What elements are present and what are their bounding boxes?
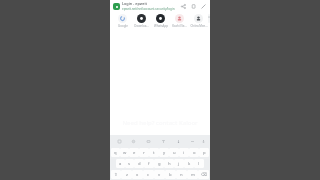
button[interactable]: y: [159, 148, 169, 157]
button[interactable]: g: [154, 159, 164, 168]
button[interactable]: c: [143, 170, 154, 179]
button[interactable]: v: [154, 170, 165, 179]
button[interactable]: Theme: [171, 135, 186, 147]
staticText: o: [193, 150, 196, 156]
staticText: Login - epwrit: [122, 1, 147, 6]
button[interactable]: b: [165, 170, 176, 179]
button[interactable]: ⌫: [198, 170, 209, 179]
staticText: z: [126, 172, 128, 178]
staticText: v: [158, 172, 161, 178]
button[interactable]: z: [121, 170, 132, 179]
staticText: p: [203, 150, 206, 156]
button[interactable]: k: [184, 159, 194, 168]
staticText: w: [123, 150, 127, 156]
staticText: Downloa...: [134, 24, 149, 28]
button[interactable]: Edit: [199, 2, 207, 10]
button[interactable]: h: [164, 159, 174, 168]
button[interactable]: a: [116, 159, 125, 168]
button[interactable]: m: [187, 170, 198, 179]
button[interactable]: Google: [113, 12, 132, 30]
button[interactable]: Downloa...: [132, 12, 151, 30]
button[interactable]: f: [144, 159, 154, 168]
button[interactable]: i: [179, 148, 189, 157]
staticText: j: [178, 161, 180, 167]
button[interactable]: WhatsApp: [151, 12, 170, 30]
staticText: l: [198, 161, 200, 167]
staticText: s: [128, 161, 131, 167]
staticText: a: [119, 161, 122, 167]
button[interactable]: Share: [179, 2, 187, 10]
button[interactable]: Voice input: [199, 135, 208, 147]
staticText: u: [173, 150, 176, 156]
staticText: q: [114, 150, 117, 156]
staticText: f: [148, 161, 150, 167]
button[interactable]: Sticker: [126, 135, 141, 147]
staticText: k: [188, 161, 191, 167]
button[interactable]: n: [176, 170, 187, 179]
staticText: y: [163, 150, 166, 156]
staticText: b: [169, 172, 172, 178]
button[interactable]: t: [149, 148, 159, 157]
staticText: Google: [118, 24, 128, 28]
staticText: d: [138, 161, 141, 167]
button[interactable]: l: [194, 159, 204, 168]
button[interactable]: [208, 12, 210, 30]
staticText: c: [147, 172, 150, 178]
button[interactable]: Chitra Mee...: [189, 12, 208, 30]
staticText: i: [183, 150, 185, 156]
button[interactable]: Clipboard: [112, 135, 126, 147]
staticText: epwrit.net/net/account-security/login: [122, 7, 175, 11]
staticText: ⇧: [114, 172, 118, 177]
button[interactable]: x: [132, 170, 143, 179]
staticText: e: [133, 150, 136, 156]
staticText: m: [191, 172, 195, 178]
button[interactable]: j: [174, 159, 184, 168]
staticText: t: [153, 150, 155, 156]
button[interactable]: p: [199, 148, 209, 157]
button[interactable]: More options: [186, 135, 199, 147]
button[interactable]: Kachil Se...: [170, 12, 189, 30]
button[interactable]: ⇧: [111, 170, 121, 179]
staticText: h: [168, 161, 171, 167]
button[interactable]: o: [189, 148, 199, 157]
staticText: r: [143, 150, 145, 156]
staticText: Chitra Mee...: [190, 24, 208, 28]
button[interactable]: s: [125, 159, 134, 168]
button[interactable]: GIF: [141, 135, 156, 147]
button[interactable]: q: [111, 148, 120, 157]
staticText: n: [180, 172, 183, 178]
button[interactable]: u: [169, 148, 179, 157]
button[interactable]: e: [129, 148, 139, 157]
button[interactable]: w: [120, 148, 129, 157]
staticText: WhatsApp: [154, 24, 168, 28]
staticText: g: [158, 161, 161, 167]
staticText: x: [136, 172, 139, 178]
staticText: Kachil Se...: [172, 24, 187, 28]
button[interactable]: r: [139, 148, 149, 157]
button[interactable]: Copy link: [189, 2, 197, 10]
staticText: ⌫: [201, 172, 207, 177]
button[interactable]: d: [134, 159, 144, 168]
button[interactable]: Translate: [156, 135, 171, 147]
